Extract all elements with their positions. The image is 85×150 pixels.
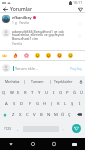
button[interactable]: W [8, 87, 15, 98]
button[interactable]: Z [10, 109, 17, 120]
staticText: Turnam [31, 79, 44, 84]
staticText: Z [12, 112, 15, 118]
staticText: Merhaba [5, 79, 20, 84]
button[interactable]: G [34, 98, 41, 109]
staticText: 10:11 [73, 0, 83, 5]
staticText: J [51, 101, 53, 107]
button[interactable]: T [29, 87, 36, 98]
staticText: W [10, 90, 14, 96]
button[interactable]: Back [0, 5, 10, 13]
button[interactable]: İ [76, 98, 83, 109]
button[interactable]: R [22, 87, 29, 98]
staticText: Q [2, 90, 6, 96]
button[interactable]: O [57, 87, 64, 98]
staticText: . [63, 126, 65, 131]
staticText: A [5, 101, 8, 107]
button[interactable]: I [50, 87, 57, 98]
staticText: X [19, 112, 22, 118]
button[interactable]: Merhaba [0, 76, 24, 87]
button[interactable]: Fire emoji [13, 53, 18, 58]
staticText: V [33, 112, 36, 118]
staticText: B [40, 112, 43, 118]
staticText: Ç [68, 112, 71, 118]
button[interactable]: J [48, 98, 55, 109]
staticText: I [53, 90, 55, 96]
button[interactable]: Crown emoji [2, 53, 7, 58]
staticText: 1 g [12, 21, 17, 25]
staticText: ?123 [4, 127, 11, 131]
button[interactable]: Recents [43, 138, 64, 150]
staticText: G [36, 101, 40, 107]
staticText: Ş [71, 101, 74, 107]
staticText: efkanilbey [12, 15, 32, 20]
staticText: Ğ [73, 90, 77, 96]
staticText: P [66, 90, 69, 96]
button[interactable]: S [10, 98, 18, 109]
button[interactable]: Laughing emoji [35, 53, 40, 58]
button[interactable]: Shift [0, 109, 10, 120]
staticText: T [31, 90, 34, 96]
button[interactable]: Blossom emoji [24, 53, 29, 58]
button[interactable]: A [2, 98, 10, 109]
button[interactable]: adarpsilti666 Bonudhost1 ve cok hazardnl… [0, 29, 85, 46]
button[interactable]: , [14, 123, 22, 134]
button[interactable]: Turnam [25, 76, 50, 87]
button[interactable]: Paylaş [69, 65, 83, 72]
button[interactable]: U [43, 87, 50, 98]
button[interactable]: Heart eyes emoji [46, 53, 51, 58]
staticText: İ [79, 101, 81, 107]
button[interactable]: Ü [78, 87, 85, 98]
button[interactable]: Teşekkürler [51, 76, 76, 87]
staticText: Paylaş [70, 66, 82, 71]
button[interactable]: Home [22, 138, 43, 150]
button[interactable]: Share [75, 5, 85, 13]
staticText: U [45, 90, 49, 96]
button[interactable]: E [15, 87, 22, 98]
button[interactable]: X [17, 109, 24, 120]
button[interactable]: Hide keyboard [64, 138, 85, 150]
staticText: Yanıtla [19, 21, 29, 25]
staticText: L [64, 101, 67, 107]
button[interactable]: H [41, 98, 48, 109]
button[interactable]: L [62, 98, 69, 109]
button[interactable]: Back [0, 138, 22, 150]
button[interactable]: efkanilbey [0, 15, 85, 26]
button[interactable]: Crying emoji [57, 53, 62, 58]
button[interactable]: Ğ [71, 87, 78, 98]
button[interactable]: P [64, 87, 71, 98]
button[interactable]: Ç [66, 109, 73, 120]
staticText: E [17, 90, 20, 96]
button[interactable]: Backspace [73, 109, 85, 120]
button[interactable]: Q [0, 87, 8, 98]
staticText: R [24, 90, 27, 96]
staticText: C [26, 112, 29, 118]
button[interactable]: K [55, 98, 62, 109]
staticText: Yorum ekle... [15, 66, 39, 71]
button[interactable]: F [26, 98, 34, 109]
button[interactable]: V [31, 109, 38, 120]
button[interactable]: Send [72, 124, 81, 133]
staticText: Ö [61, 112, 65, 118]
button[interactable]: Y [36, 87, 43, 98]
staticText: , [17, 126, 19, 131]
button[interactable]: C [24, 109, 31, 120]
button[interactable]: D [18, 98, 26, 109]
button[interactable]: M [52, 109, 59, 120]
staticText: S [13, 101, 16, 107]
button[interactable]: Ö [59, 109, 66, 120]
button[interactable]: B [38, 109, 45, 120]
button[interactable]: Grinning emoji [68, 53, 73, 58]
staticText: Teşekkürler [54, 79, 73, 84]
staticText: H [43, 101, 47, 107]
staticText: F [29, 101, 32, 107]
button[interactable]: Voice input [76, 76, 85, 87]
button[interactable]: ?123 [0, 123, 14, 134]
button[interactable]: N [45, 109, 52, 120]
button[interactable]: Ş [69, 98, 76, 109]
staticText: Yorumlar [10, 6, 33, 13]
staticText: adarpsilti666 Bonudhost1 ve cok hazardnl… [12, 29, 76, 41]
